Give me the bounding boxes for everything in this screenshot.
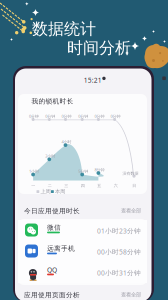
- button[interactable]: 查看全部: [121, 207, 141, 214]
- staticText: 4小时: [61, 139, 71, 144]
- button[interactable]: QQ: [18, 262, 147, 283]
- staticText: 我的锁机时长: [31, 97, 73, 105]
- staticText: 本周: [55, 188, 65, 195]
- staticText: 数据统计: [32, 19, 96, 39]
- staticText: 0分钟: [94, 113, 104, 119]
- staticText: 0分钟: [29, 113, 39, 119]
- staticText: 二: [48, 183, 52, 188]
- staticText: 0分钟: [61, 113, 71, 119]
- staticText: 上周: [40, 188, 50, 195]
- staticText: 1小时: [29, 168, 39, 174]
- button[interactable]: 远离手机: [18, 241, 147, 262]
- staticText: 查看全部: [121, 207, 141, 214]
- staticText: QQ: [47, 265, 57, 274]
- staticText: 今日应用使用时长: [24, 207, 80, 215]
- staticText: 5分钟: [78, 168, 88, 174]
- button[interactable]: 微信: [18, 220, 147, 241]
- staticText: 时间分析: [67, 38, 131, 58]
- staticText: 日: [132, 183, 136, 188]
- staticText: 远离手机: [47, 244, 75, 253]
- staticText: 六: [114, 183, 118, 188]
- staticText: 0分钟: [111, 113, 121, 119]
- staticText: 三: [64, 183, 68, 188]
- staticText: 0分钟: [78, 113, 88, 119]
- staticText: 应用使用页面分析: [24, 291, 80, 299]
- button[interactable]: 查看全部: [121, 291, 141, 298]
- staticText: 00小时58分钟: [97, 247, 141, 256]
- staticText: 微信: [47, 223, 61, 232]
- staticText: 查看全部: [121, 291, 141, 298]
- staticText: 四: [81, 183, 85, 188]
- staticText: 2小时: [45, 153, 55, 159]
- staticText: 0分钟: [45, 113, 55, 119]
- staticText: 01小时23分钟: [97, 226, 141, 235]
- staticText: 一: [31, 183, 35, 188]
- staticText: 五: [97, 183, 101, 188]
- staticText: 8分钟: [94, 167, 104, 172]
- staticText: 没有数据: [122, 171, 138, 176]
- staticText: 00小时31分钟: [97, 268, 141, 277]
- staticText: 15:21: [84, 76, 102, 85]
